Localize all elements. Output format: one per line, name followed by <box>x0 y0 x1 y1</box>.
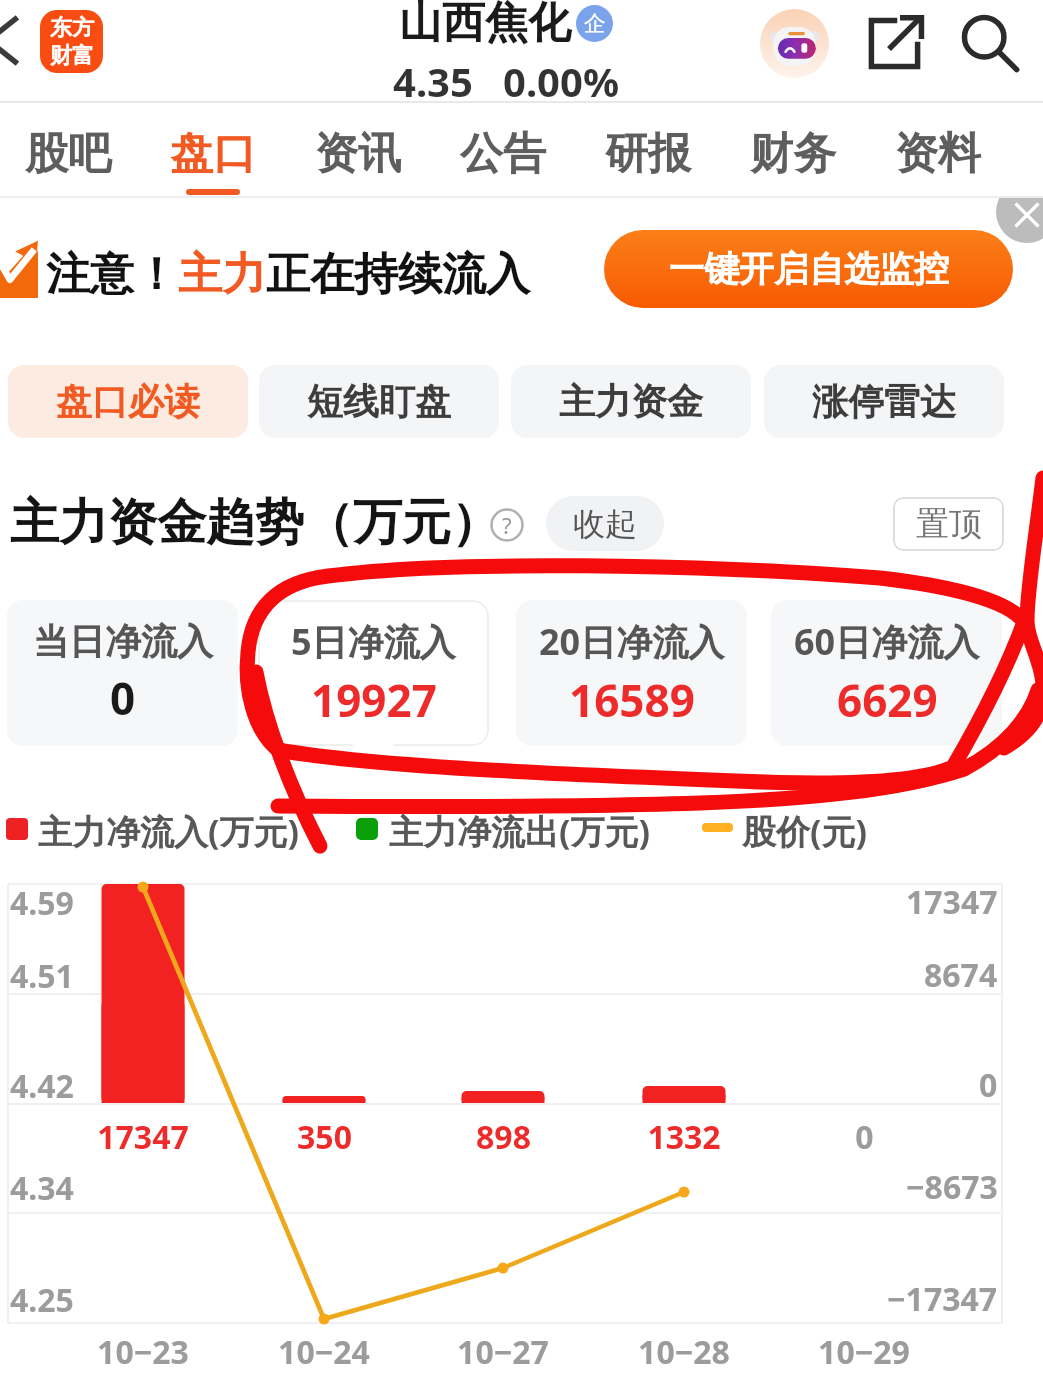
staticText: 4.34 <box>10 1166 74 1210</box>
button[interactable]: 一键开启自选监控 <box>604 230 1013 308</box>
staticText: 5日净流入 <box>291 617 456 666</box>
staticText: 主力资金趋势（万元） <box>10 492 500 554</box>
staticText: 正在持续流入 <box>266 247 530 302</box>
button[interactable]: 涨停雷达 <box>764 365 1004 438</box>
staticText: 财务 <box>750 127 836 181</box>
button[interactable]: Close banner <box>996 198 1043 243</box>
button[interactable]: 资讯 <box>285 103 430 197</box>
staticText: 4.35 <box>393 54 473 108</box>
staticText: 股价(元) <box>742 808 868 854</box>
staticText: 17347 <box>97 1115 189 1159</box>
staticText: 当日净流入 <box>33 619 213 664</box>
button[interactable]: 主力资金 <box>511 365 751 438</box>
button[interactable]: 置顶 <box>893 497 1004 551</box>
staticText: 资料 <box>895 127 981 181</box>
button[interactable]: Search <box>947 0 1033 86</box>
staticText: 4.25 <box>10 1278 74 1322</box>
staticText: 股吧 <box>25 127 111 181</box>
staticText: 主力净流入(万元) <box>38 808 300 854</box>
staticText: 主力资金 <box>559 379 703 424</box>
staticText: 10−28 <box>638 1330 730 1374</box>
button[interactable]: 60日净流入 <box>771 600 1002 746</box>
staticText: 研报 <box>605 127 691 181</box>
staticText: 19927 <box>311 670 437 730</box>
staticText: 10−29 <box>818 1330 910 1374</box>
staticText: −8673 <box>906 1165 998 1209</box>
button[interactable]: 短线盯盘 <box>259 365 499 438</box>
button[interactable]: 资料 <box>865 103 1010 197</box>
button[interactable]: 盘口 <box>140 103 285 197</box>
staticText: ? <box>502 510 512 540</box>
staticText: 8674 <box>924 953 998 997</box>
staticText: 公告 <box>460 127 546 181</box>
staticText: −17347 <box>887 1277 998 1321</box>
staticText: 主力净流出(万元) <box>389 808 651 854</box>
staticText: 10−27 <box>457 1330 549 1374</box>
button[interactable]: 财务 <box>720 103 865 197</box>
button[interactable]: 5日净流入 <box>258 600 489 746</box>
staticText: 主力 <box>178 247 266 302</box>
staticText: 财富 <box>50 42 94 70</box>
button[interactable]: AI assistant <box>751 0 837 86</box>
button[interactable]: Help <box>490 508 524 542</box>
staticText: 收起 <box>573 504 637 544</box>
button[interactable]: Back <box>0 8 36 66</box>
staticText: 898 <box>476 1115 531 1159</box>
button[interactable]: 收起 <box>546 496 664 551</box>
staticText: 盘口 <box>170 127 256 181</box>
staticText: 350 <box>297 1115 352 1159</box>
staticText: 短线盯盘 <box>307 379 451 424</box>
staticText: 注意！ <box>46 247 178 302</box>
staticText: 一键开启自选监控 <box>669 247 949 291</box>
button[interactable]: 研报 <box>575 103 720 197</box>
button[interactable]: 股吧 <box>0 103 140 197</box>
staticText: 资讯 <box>315 127 401 181</box>
button[interactable]: 当日净流入 <box>7 600 238 746</box>
button[interactable]: 20日净流入 <box>516 600 747 746</box>
staticText: 0.00% <box>503 54 619 108</box>
staticText: 东方 <box>50 14 94 42</box>
staticText: 企 <box>584 10 606 38</box>
staticText: 6629 <box>837 670 938 730</box>
button[interactable]: East Money logo <box>40 10 103 73</box>
staticText: 盘口必读 <box>56 379 200 424</box>
staticText: 置顶 <box>916 503 982 545</box>
staticText: 0 <box>110 668 136 728</box>
button[interactable]: 公告 <box>430 103 575 197</box>
staticText: 0 <box>855 1115 874 1159</box>
staticText: 17347 <box>906 880 998 924</box>
button[interactable]: Share <box>851 0 937 86</box>
staticText: 4.59 <box>10 881 74 925</box>
staticText: 山西焦化 <box>399 0 571 50</box>
staticText: 4.51 <box>10 954 74 998</box>
staticText: 10−23 <box>97 1330 189 1374</box>
staticText: 4.42 <box>10 1064 74 1108</box>
staticText: 涨停雷达 <box>812 379 956 424</box>
staticText: 60日净流入 <box>794 617 980 666</box>
staticText: 1332 <box>647 1115 721 1159</box>
staticText: 0 <box>979 1063 998 1107</box>
button[interactable]: 盘口必读 <box>8 365 248 438</box>
staticText: 16589 <box>569 670 695 730</box>
staticText: 20日净流入 <box>539 617 725 666</box>
staticText: 10−24 <box>278 1330 370 1374</box>
